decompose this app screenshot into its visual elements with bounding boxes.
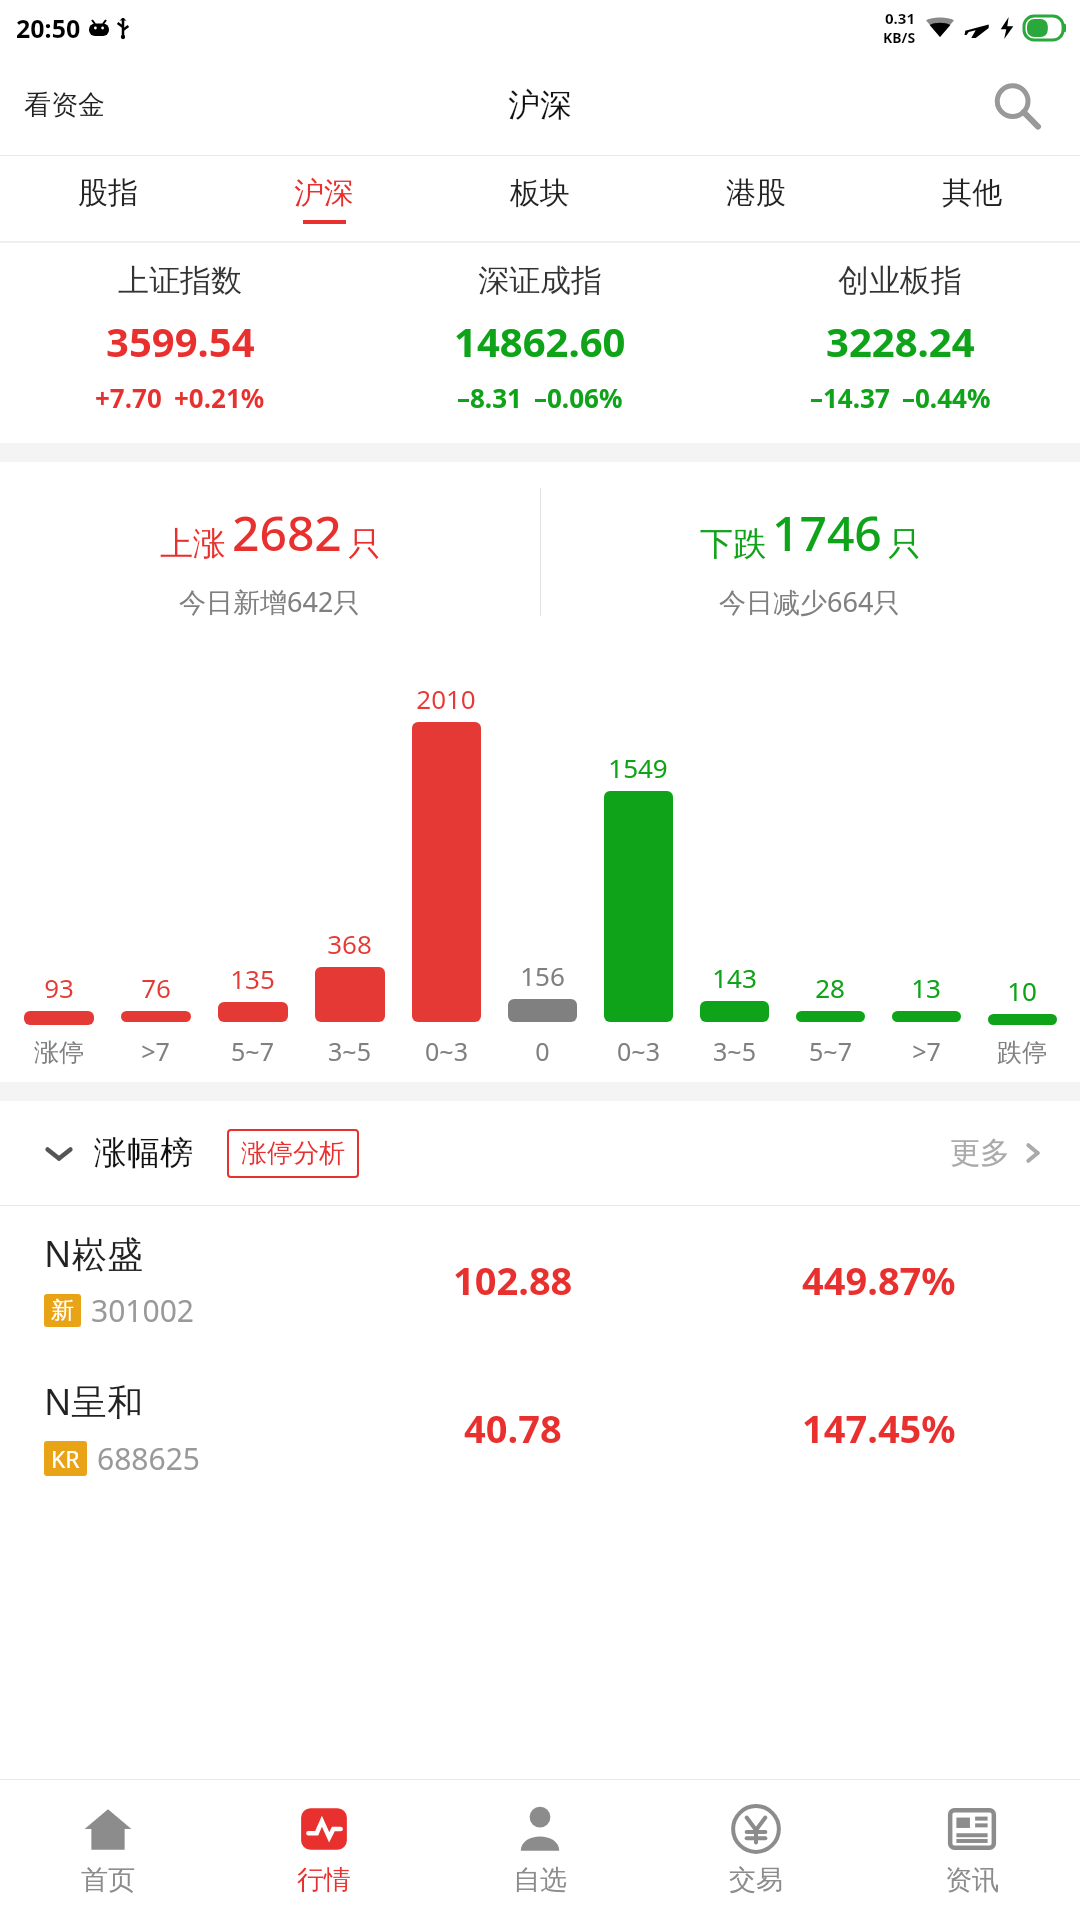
- staticText: 只: [888, 523, 921, 565]
- staticText: 143: [712, 960, 757, 995]
- button[interactable]: 76: [107, 970, 204, 1068]
- staticText: 28: [815, 970, 845, 1005]
- button[interactable]: 143: [686, 960, 782, 1068]
- staticText: 新: [51, 1296, 74, 1325]
- staticText: 3~5: [713, 1034, 756, 1068]
- button[interactable]: 交易: [648, 1780, 864, 1920]
- staticText: 1549: [608, 750, 668, 785]
- staticText: 跌停: [997, 1037, 1047, 1068]
- button[interactable]: 上涨: [0, 462, 540, 642]
- staticText: 301002: [91, 1290, 194, 1331]
- staticText: 1746: [772, 500, 882, 565]
- staticText: 资讯: [945, 1863, 999, 1897]
- staticText: 涨停分析: [241, 1137, 345, 1170]
- staticText: 行情: [297, 1863, 351, 1897]
- staticText: 0~3: [617, 1034, 660, 1068]
- staticText: 0~3: [425, 1034, 468, 1068]
- staticText: 下跌: [700, 523, 766, 565]
- staticText: 自选: [513, 1863, 567, 1897]
- staticText: 20:50: [16, 11, 81, 45]
- staticText: 368: [327, 926, 372, 961]
- staticText: 涨幅榜: [94, 1132, 193, 1174]
- staticText: –14.37: [810, 380, 890, 415]
- staticText: N呈和: [44, 1377, 144, 1426]
- staticText: –0.44%: [902, 380, 991, 415]
- button[interactable]: 13: [878, 970, 974, 1068]
- staticText: 上证指数: [118, 261, 242, 300]
- staticText: 102.88: [453, 1254, 573, 1306]
- staticText: 2682: [232, 500, 342, 565]
- staticText: 5~7: [231, 1034, 274, 1068]
- staticText: 只: [348, 523, 381, 565]
- staticText: 14862.60: [454, 314, 626, 368]
- button[interactable]: 下跌: [540, 462, 1080, 642]
- button[interactable]: 368: [301, 926, 398, 1068]
- button[interactable]: 深证成指: [360, 243, 720, 443]
- staticText: 3228.24: [826, 314, 975, 368]
- staticText: 147.45%: [802, 1402, 956, 1454]
- staticText: 沪深: [508, 85, 572, 125]
- staticText: 今日新增642只: [179, 583, 361, 620]
- staticText: KB/S: [883, 28, 916, 47]
- staticText: KR: [51, 1443, 80, 1474]
- button[interactable]: 10: [974, 973, 1070, 1068]
- button[interactable]: 135: [204, 961, 301, 1068]
- staticText: +7.70: [95, 380, 162, 415]
- staticText: 今日减少664只: [719, 583, 901, 620]
- button[interactable]: 沪深: [216, 156, 432, 241]
- staticText: 156: [520, 958, 565, 993]
- button[interactable]: Search: [988, 77, 1044, 133]
- staticText: 深证成指: [478, 261, 602, 300]
- button[interactable]: 看资金: [12, 80, 117, 130]
- staticText: 板块: [510, 174, 570, 212]
- button[interactable]: 股指: [0, 156, 216, 241]
- button[interactable]: N呈和: [0, 1354, 1080, 1502]
- staticText: 首页: [81, 1863, 135, 1897]
- staticText: 沪深: [294, 174, 354, 212]
- button[interactable]: 涨停分析: [227, 1129, 359, 1178]
- staticText: 5~7: [809, 1034, 852, 1068]
- staticText: 上涨: [160, 523, 226, 565]
- button[interactable]: 2010: [398, 681, 494, 1068]
- button[interactable]: 港股: [648, 156, 864, 241]
- staticText: 3599.54: [106, 314, 255, 368]
- staticText: 其他: [942, 174, 1002, 212]
- button[interactable]: 156: [494, 958, 590, 1068]
- staticText: 港股: [726, 174, 786, 212]
- staticText: 涨停: [34, 1037, 84, 1068]
- staticText: 13: [911, 970, 941, 1005]
- button[interactable]: 其他: [864, 156, 1080, 241]
- button[interactable]: 首页: [0, 1780, 216, 1920]
- button[interactable]: 上证指数: [0, 243, 360, 443]
- staticText: 更多: [950, 1134, 1010, 1172]
- staticText: +0.21%: [174, 380, 265, 415]
- staticText: 0.31: [885, 8, 915, 28]
- staticText: 688625: [97, 1438, 200, 1479]
- staticText: 2010: [416, 681, 476, 716]
- staticText: 股指: [78, 174, 138, 212]
- staticText: 看资金: [24, 88, 105, 122]
- staticText: 40.78: [464, 1402, 562, 1454]
- staticText: 0: [535, 1034, 550, 1068]
- staticText: >7: [912, 1034, 941, 1068]
- button[interactable]: 板块: [432, 156, 648, 241]
- button[interactable]: 资讯: [864, 1780, 1080, 1920]
- button[interactable]: 93: [10, 970, 107, 1068]
- staticText: 76: [141, 970, 171, 1005]
- button[interactable]: N崧盛: [0, 1206, 1080, 1354]
- button[interactable]: 更多: [950, 1134, 1080, 1172]
- staticText: 449.87%: [802, 1254, 956, 1306]
- staticText: >7: [141, 1034, 170, 1068]
- button[interactable]: 行情: [216, 1780, 432, 1920]
- button[interactable]: 1549: [590, 750, 686, 1068]
- button[interactable]: 28: [782, 970, 878, 1068]
- staticText: 10: [1007, 973, 1037, 1008]
- staticText: N崧盛: [44, 1229, 144, 1278]
- button[interactable]: 涨幅榜: [0, 1101, 1080, 1205]
- staticText: –0.06%: [534, 380, 623, 415]
- button[interactable]: 创业板指: [720, 243, 1080, 443]
- staticText: 135: [230, 961, 275, 996]
- staticText: –8.31: [457, 380, 522, 415]
- button[interactable]: 自选: [432, 1780, 648, 1920]
- staticText: 3~5: [328, 1034, 371, 1068]
